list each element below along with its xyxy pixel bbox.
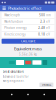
- button[interactable]: Kinetic energy: [2, 31, 54, 37]
- staticText: 5.56e-36 kg: [19, 53, 37, 56]
- staticText: 500: [39, 13, 45, 17]
- button[interactable]: Wavelength: [2, 12, 54, 18]
- button[interactable]: Recent apps: [40, 90, 49, 99]
- staticText: Great calculators: [3, 70, 24, 73]
- button[interactable]: CALCULATE: [2, 39, 54, 44]
- button[interactable]: INSTALL: [39, 83, 53, 87]
- staticText: 0.18: [38, 33, 45, 36]
- button[interactable]: Menu: [1, 5, 7, 11]
- staticText: nm: [46, 13, 50, 17]
- staticText: Wavelength: [4, 13, 20, 17]
- staticText: eV: [46, 20, 50, 23]
- staticText: Work function: [4, 20, 23, 23]
- staticText: eV: [46, 26, 50, 30]
- staticText: Photon energy: [4, 26, 26, 30]
- button[interactable]: Home: [23, 90, 32, 99]
- staticText: Kinetic energy: [4, 33, 25, 36]
- staticText: CALCULATE: [21, 39, 35, 43]
- button[interactable]: Work function: [2, 19, 54, 25]
- staticText: eV: [46, 33, 50, 36]
- staticText: Photoelectric effect: [8, 6, 41, 11]
- staticText: 2.48: [38, 26, 45, 30]
- staticText: every engineer.: [3, 79, 25, 83]
- staticText: INSTALL: [42, 83, 51, 86]
- staticText: Advanced tools for: [3, 75, 29, 78]
- staticText: 2.3: [40, 20, 45, 23]
- button[interactable]: Photon energy: [2, 25, 54, 31]
- staticText: Equivalent mass: [14, 46, 42, 51]
- button[interactable]: Back: [7, 90, 16, 99]
